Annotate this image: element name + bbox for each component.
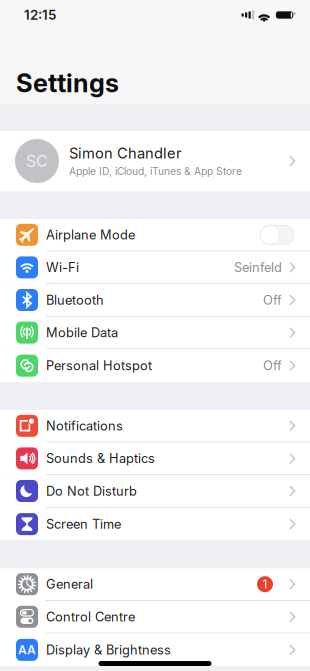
staticText: 12:15 [24,7,56,23]
button[interactable]: Notifications [0,410,310,443]
staticText: SC [26,151,48,171]
button[interactable]: Control Centre [0,601,310,634]
staticText: Control Centre [46,609,135,625]
staticText: Airplane Mode [46,227,135,243]
button[interactable]: Airplane Mode [0,219,310,252]
button[interactable]: Bluetooth [0,284,310,317]
button[interactable]: Sounds & Haptics [0,443,310,475]
staticText: Notifications [46,418,123,434]
staticText: Off [263,358,282,373]
staticText: Mobile Data [46,325,118,340]
button[interactable]: AA [0,634,310,666]
staticText: Apple ID, iCloud, iTunes & App Store [69,165,242,178]
staticText: AA [18,643,36,657]
staticText: Sounds & Haptics [46,451,155,466]
button[interactable]: Personal Hotspot [0,349,310,382]
button[interactable]: SC [0,131,310,191]
staticText: Seinfeld [234,260,282,275]
staticText: Off [263,292,282,308]
staticText: 1 [262,577,267,591]
staticText: Do Not Disturb [46,483,137,499]
staticText: Wi-Fi [46,260,79,275]
button[interactable]: General [0,568,310,601]
button[interactable]: Wi-Fi [0,252,310,284]
staticText: Settings [16,68,119,98]
staticText: Bluetooth [46,292,104,308]
button[interactable]: Mobile Data [0,317,310,349]
staticText: General [46,576,93,592]
button[interactable]: Screen Time [0,508,310,540]
staticText: Personal Hotspot [46,358,152,373]
button[interactable]: Do Not Disturb [0,475,310,508]
staticText: Screen Time [46,516,121,532]
staticText: Simon Chandler [69,144,182,162]
staticText: Display & Brightness [46,642,171,658]
